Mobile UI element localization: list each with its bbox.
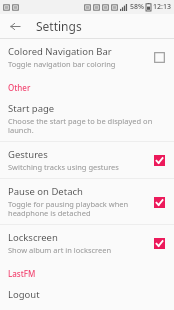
- staticText: Choose the start page to be displayed on…: [8, 116, 169, 135]
- staticText: Other: [8, 82, 31, 93]
- staticText: Settings: [36, 18, 82, 34]
- button[interactable]: Start page: [0, 96, 174, 141]
- button[interactable]: Gestures enabled: [149, 150, 169, 170]
- staticText: Start page: [8, 102, 55, 115]
- staticText: Toggle navigation bar coloring: [8, 59, 116, 69]
- button[interactable]: Colored Navigation Bar: [0, 39, 174, 75]
- button[interactable]: Back: [4, 15, 26, 37]
- staticText: 58%: [130, 2, 144, 12]
- staticText: Lockscreen: [8, 231, 58, 244]
- staticText: 12:13: [153, 2, 171, 12]
- button[interactable]: Pause on Detach enabled: [149, 192, 169, 212]
- staticText: Colored Navigation Bar: [8, 45, 112, 58]
- button[interactable]: Pause on Detach: [0, 179, 174, 224]
- button[interactable]: Lockscreen enabled: [149, 233, 169, 253]
- staticText: Switching tracks using gestures: [8, 162, 119, 172]
- button[interactable]: Logout: [0, 282, 174, 310]
- staticText: Gestures: [8, 148, 48, 161]
- button[interactable]: Gestures: [0, 142, 174, 178]
- button[interactable]: Lockscreen: [0, 225, 174, 261]
- button[interactable]: Colored Navigation Bar disabled: [149, 47, 169, 67]
- staticText: LastFM: [8, 268, 36, 279]
- staticText: Pause on Detach: [8, 185, 83, 198]
- staticText: Show album art in lockscreen: [8, 245, 112, 255]
- staticText: Toggle for pausing playback when headpho…: [8, 199, 145, 218]
- staticText: Logout: [8, 288, 40, 301]
